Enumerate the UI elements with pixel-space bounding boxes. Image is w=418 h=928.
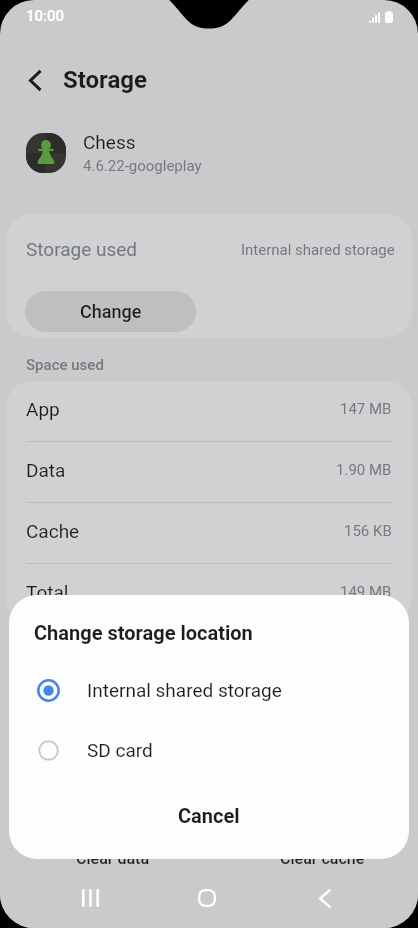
button[interactable]: Clear cache: [226, 835, 418, 881]
button[interactable]: App: [6, 381, 412, 442]
staticText: 147 MB: [340, 400, 392, 418]
staticText: 10:00: [26, 7, 65, 25]
staticText: 149 MB: [340, 583, 392, 601]
staticText: Total: [26, 581, 69, 603]
staticText: Cache: [26, 520, 80, 542]
button[interactable]: Change: [25, 291, 196, 332]
button[interactable]: Recent apps: [62, 878, 118, 918]
staticText: Clear cache: [280, 849, 365, 868]
staticText: 156 KB: [344, 522, 392, 540]
staticText: Clear data: [76, 849, 150, 868]
staticText: Change storage location: [34, 621, 253, 644]
staticText: SD card: [87, 739, 153, 761]
staticText: Storage: [63, 66, 148, 94]
button[interactable]: Total: [6, 564, 412, 624]
staticText: 4.6.22-googleplay: [83, 157, 202, 175]
button[interactable]: Data: [6, 442, 412, 503]
staticText: Data: [26, 459, 66, 481]
staticText: Internal shared storage: [87, 679, 282, 701]
staticText: App: [26, 398, 60, 420]
staticText: Storage used: [26, 238, 138, 260]
staticText: Chess: [83, 131, 136, 153]
button[interactable]: Cache: [6, 503, 412, 564]
staticText: 1.90 MB: [336, 461, 392, 479]
button[interactable]: Back: [297, 878, 353, 918]
button[interactable]: Internal shared storage: [9, 660, 409, 720]
button[interactable]: Clear data: [15, 835, 211, 881]
staticText: Space used: [26, 356, 104, 374]
staticText: Internal shared storage: [241, 241, 395, 259]
button[interactable]: SD card: [9, 720, 409, 780]
button[interactable]: Cancel: [9, 780, 409, 859]
button[interactable]: Navigate up: [13, 58, 57, 102]
staticText: Change: [80, 301, 142, 322]
button[interactable]: Home: [179, 878, 235, 918]
staticText: Cancel: [178, 804, 240, 827]
